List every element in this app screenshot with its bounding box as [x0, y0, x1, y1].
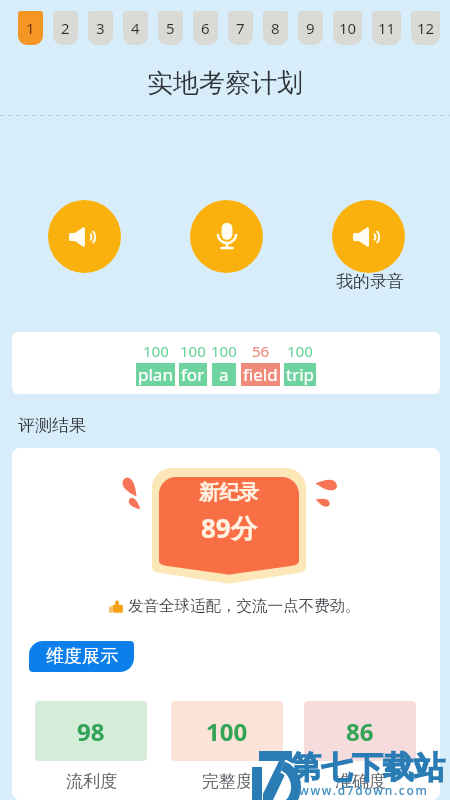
button[interactable]: 10 — [333, 11, 362, 45]
button[interactable]: 维度展示 — [29, 641, 134, 672]
staticText: www.d7down.com — [299, 782, 429, 798]
staticText: 9 — [306, 18, 315, 38]
button[interactable]: 4 — [123, 11, 148, 45]
button[interactable]: 11 — [372, 11, 401, 45]
staticText: 发音全球适配，交流一点不费劲。 — [128, 596, 361, 616]
staticText: 第七下载站 — [290, 748, 445, 787]
staticText: 维度展示 — [46, 645, 118, 668]
button[interactable]: 12 — [411, 11, 440, 45]
staticText: 6 — [201, 18, 210, 38]
button[interactable]: 3 — [88, 11, 113, 45]
staticText: 100 — [206, 715, 248, 748]
staticText: 5 — [166, 18, 175, 38]
staticText: 56 — [252, 341, 270, 361]
staticText: 89分 — [201, 510, 257, 546]
staticText: 4 — [131, 18, 140, 38]
staticText: 7 — [236, 18, 245, 38]
staticText: 100 — [211, 341, 237, 361]
staticText: trip — [286, 363, 314, 386]
staticText: 100 — [180, 341, 206, 361]
staticText: a — [219, 363, 229, 386]
staticText: field — [243, 363, 278, 386]
button[interactable]: Play audio — [48, 200, 121, 273]
staticText: 完整度 — [202, 771, 253, 792]
staticText: 8 — [271, 18, 280, 38]
button[interactable]: Record — [190, 200, 263, 273]
staticText: 100 — [287, 341, 313, 361]
button[interactable]: 9 — [298, 11, 323, 45]
staticText: 新纪录 — [199, 480, 259, 505]
staticText: 12 — [417, 18, 435, 38]
staticText: 准确度 — [335, 771, 386, 792]
button[interactable]: 6 — [193, 11, 218, 45]
staticText: 流利度 — [66, 771, 117, 792]
staticText: 实地考察计划 — [0, 67, 450, 100]
button[interactable]: 1 — [18, 11, 43, 45]
button[interactable]: 7 — [228, 11, 253, 45]
staticText: 2 — [61, 18, 70, 38]
staticText: 98 — [77, 715, 105, 748]
staticText: 86 — [346, 715, 374, 748]
staticText: 评测结果 — [18, 415, 86, 436]
staticText: plan — [138, 363, 173, 386]
staticText: for — [181, 363, 205, 386]
button[interactable]: 2 — [53, 11, 78, 45]
staticText: 10 — [339, 18, 357, 38]
button[interactable]: 8 — [263, 11, 288, 45]
staticText: 3 — [96, 18, 105, 38]
staticText: 100 — [143, 341, 169, 361]
button[interactable]: My recording — [332, 200, 405, 273]
staticText: 11 — [378, 18, 396, 38]
staticText: 1 — [26, 18, 35, 38]
staticText: 我的录音 — [336, 271, 404, 292]
button[interactable]: 5 — [158, 11, 183, 45]
